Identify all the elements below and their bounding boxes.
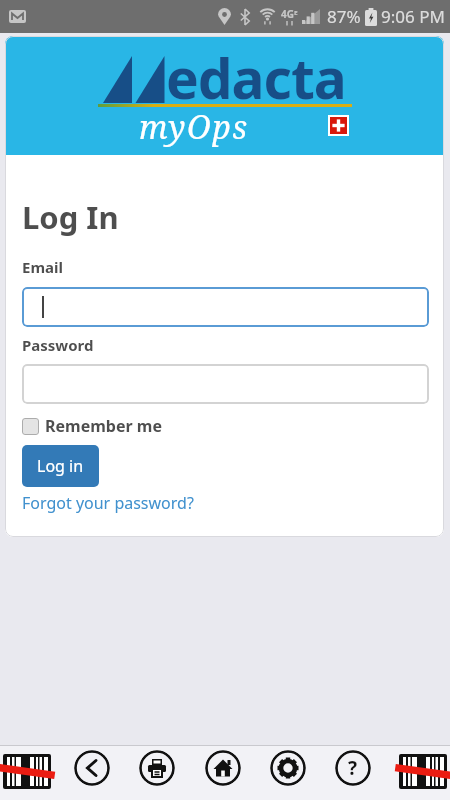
staticText: Password: [22, 335, 94, 355]
staticText: 4Gᴱ: [281, 7, 298, 21]
staticText: Email: [22, 257, 63, 277]
button[interactable]: ?: [335, 750, 371, 786]
staticText: 9:06 PM: [381, 5, 445, 28]
button[interactable]: [270, 750, 306, 786]
staticText: ?: [348, 755, 358, 781]
button[interactable]: Remember me: [22, 415, 162, 437]
button[interactable]: [74, 750, 110, 786]
staticText: 87%: [327, 5, 361, 28]
button[interactable]: [399, 754, 447, 789]
staticText: Log in: [37, 455, 84, 477]
staticText: Remember me: [45, 415, 162, 437]
button[interactable]: Forgot your password?: [22, 492, 194, 514]
staticText: myOps: [139, 105, 249, 149]
button[interactable]: [22, 287, 429, 327]
button[interactable]: [3, 754, 51, 789]
button[interactable]: [139, 750, 175, 786]
button[interactable]: Log in: [22, 445, 99, 487]
button[interactable]: [22, 364, 429, 404]
staticText: edacta: [166, 40, 346, 115]
staticText: Log In: [22, 196, 119, 238]
button[interactable]: [205, 750, 241, 786]
